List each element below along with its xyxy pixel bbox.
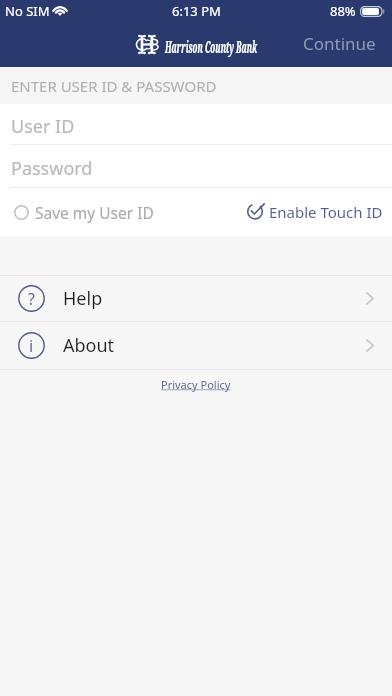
staticText: Continue xyxy=(303,32,376,55)
button[interactable]: Privacy Policy xyxy=(151,375,241,394)
staticText: Enable Touch ID xyxy=(269,202,383,222)
staticText: About xyxy=(63,333,115,358)
staticText: Save my User ID xyxy=(35,202,154,223)
button[interactable]: User ID xyxy=(0,104,392,144)
button[interactable]: Continue xyxy=(283,25,392,62)
button[interactable]: Password xyxy=(0,145,392,187)
staticText: 6:13 PM xyxy=(172,2,221,20)
staticText: ENTER USER ID & PASSWORD xyxy=(11,76,217,96)
staticText: No SIM xyxy=(5,2,50,20)
staticText: Privacy Policy xyxy=(161,377,231,392)
button[interactable]: i xyxy=(0,322,392,369)
button[interactable]: Save my User ID xyxy=(0,188,164,236)
staticText: Help xyxy=(63,286,103,311)
staticText: ? xyxy=(28,288,35,310)
button[interactable]: ? xyxy=(0,276,392,321)
staticText: Harrison County Bank xyxy=(165,35,257,58)
staticText: User ID xyxy=(11,114,75,139)
button[interactable]: Enable Touch ID xyxy=(233,188,392,236)
staticText: 88% xyxy=(330,2,356,20)
staticText: i xyxy=(29,335,34,357)
staticText: Password xyxy=(11,156,93,181)
